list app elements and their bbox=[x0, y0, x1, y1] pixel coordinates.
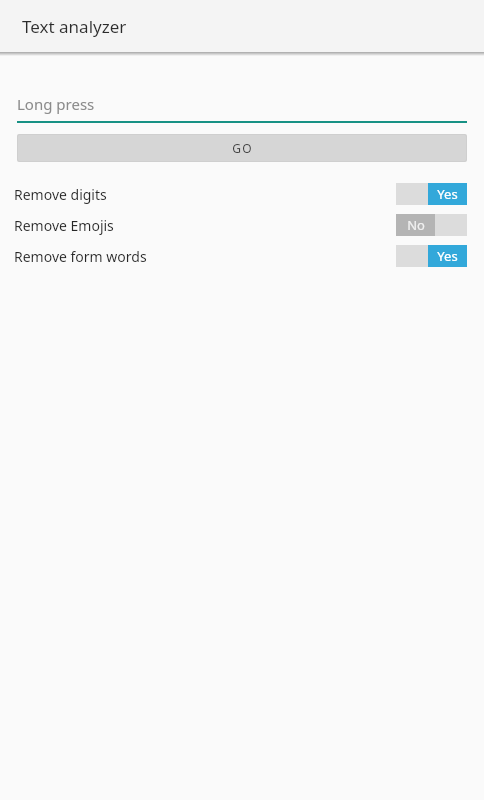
button[interactable]: No bbox=[396, 214, 467, 236]
staticText: No bbox=[407, 216, 425, 234]
button[interactable]: GO bbox=[18, 135, 466, 161]
button[interactable]: Yes bbox=[396, 245, 467, 267]
staticText: Text analyzer bbox=[22, 15, 127, 38]
staticText: Long press bbox=[17, 94, 95, 114]
staticText: Remove form words bbox=[14, 247, 147, 266]
button[interactable]: Long press bbox=[17, 94, 467, 123]
staticText: Remove digits bbox=[14, 185, 107, 204]
staticText: GO bbox=[232, 140, 253, 156]
button[interactable]: Remove form words bbox=[0, 245, 484, 267]
button[interactable]: Remove Emojis bbox=[0, 214, 484, 236]
button[interactable]: Remove digits bbox=[0, 183, 484, 205]
staticText: Yes bbox=[437, 185, 458, 203]
staticText: Remove Emojis bbox=[14, 216, 114, 235]
staticText: Yes bbox=[437, 247, 458, 265]
button[interactable]: Yes bbox=[396, 183, 467, 205]
